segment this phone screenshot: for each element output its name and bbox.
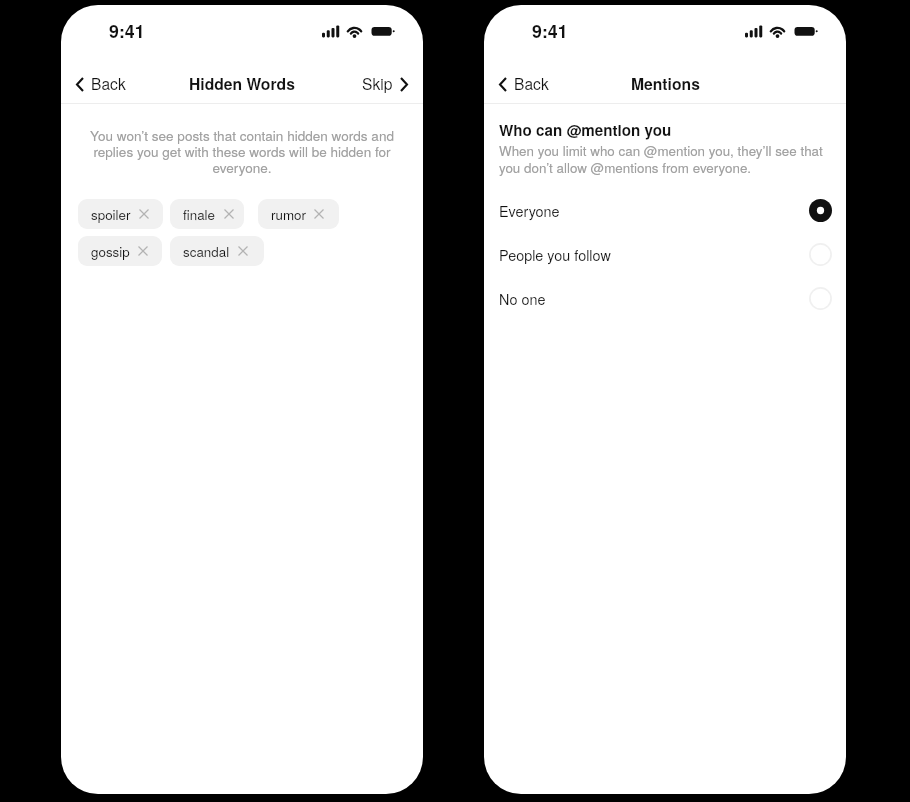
- staticText: Mentions: [631, 72, 700, 94]
- staticText: scandal: [183, 242, 230, 261]
- staticText: Back: [514, 72, 549, 94]
- other: Signal, wifi and battery status: [744, 19, 820, 38]
- staticText: Back: [91, 72, 126, 94]
- button[interactable]: No one: [484, 276, 846, 320]
- button[interactable]: Remove rumor: [314, 209, 324, 219]
- button[interactable]: gossip: [78, 236, 162, 266]
- staticText: Who can @mention you: [499, 119, 672, 141]
- staticText: Skip: [362, 72, 393, 94]
- other: Signal, wifi and battery status: [321, 19, 397, 38]
- button[interactable]: Skip: [356, 65, 414, 101]
- button[interactable]: Remove finale: [224, 209, 234, 219]
- staticText: Hidden Words: [189, 72, 295, 94]
- staticText: finale: [183, 205, 216, 224]
- staticText: You won’t see posts that contain hidden …: [87, 125, 397, 177]
- button[interactable]: rumor: [258, 199, 339, 229]
- button[interactable]: Everyone: [484, 188, 846, 232]
- button[interactable]: finale: [170, 199, 244, 229]
- staticText: spoiler: [91, 205, 131, 224]
- staticText: When you limit who can @mention you, the…: [499, 141, 833, 177]
- staticText: rumor: [271, 205, 306, 224]
- button[interactable]: Remove spoiler: [139, 209, 149, 219]
- button[interactable]: scandal: [170, 236, 264, 266]
- button[interactable]: Remove gossip: [138, 246, 148, 256]
- staticText: gossip: [91, 242, 130, 261]
- button[interactable]: Back: [70, 65, 132, 101]
- staticText: 9:41: [109, 18, 145, 43]
- staticText: Everyone: [499, 200, 560, 221]
- staticText: 9:41: [532, 18, 568, 43]
- button[interactable]: People you follow: [484, 232, 846, 276]
- button[interactable]: Back: [493, 65, 555, 101]
- button[interactable]: spoiler: [78, 199, 163, 229]
- staticText: People you follow: [499, 244, 611, 265]
- staticText: No one: [499, 288, 546, 309]
- button[interactable]: Remove scandal: [238, 246, 248, 256]
